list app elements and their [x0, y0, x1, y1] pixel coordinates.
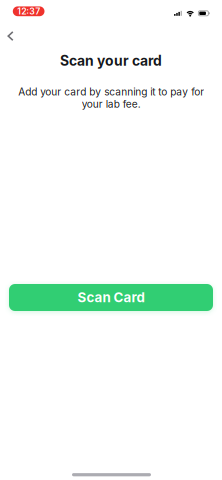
- button[interactable]: Back: [0, 16, 24, 47]
- staticText: Scan your card: [60, 52, 162, 69]
- staticText: 12:37: [17, 6, 40, 17]
- button[interactable]: Scan Card: [9, 284, 213, 311]
- staticText: Add your card by scanning it to pay for …: [18, 86, 204, 110]
- staticText: Scan Card: [77, 289, 144, 305]
